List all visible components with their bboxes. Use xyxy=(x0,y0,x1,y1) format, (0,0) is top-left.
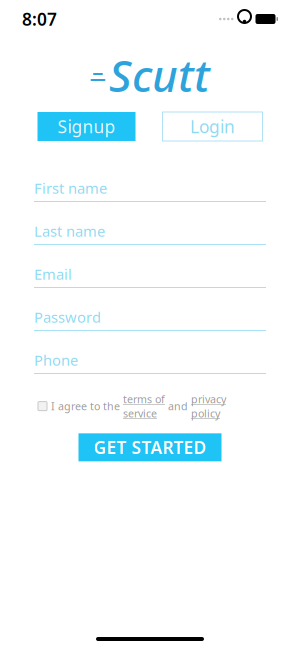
staticText: GET STARTED xyxy=(93,436,206,459)
staticText: Phone xyxy=(34,350,78,370)
staticText: 8:07 xyxy=(22,7,57,30)
staticText: Password xyxy=(34,307,101,327)
staticText: First name xyxy=(34,178,107,198)
staticText: Email xyxy=(34,264,72,284)
staticText: Scutt xyxy=(109,46,210,104)
staticText: Last name xyxy=(34,221,105,241)
button[interactable]: Signup xyxy=(37,112,135,141)
staticText: terms of service xyxy=(123,392,165,420)
button[interactable]: privacy policy xyxy=(191,392,226,420)
button[interactable]: Last name xyxy=(34,210,266,253)
button[interactable]: Password xyxy=(34,296,266,339)
staticText: privacy policy xyxy=(191,392,226,420)
staticText: Login xyxy=(190,115,235,138)
button[interactable]: Phone xyxy=(34,339,266,382)
button[interactable]: Email xyxy=(34,253,266,296)
button[interactable]: terms of service xyxy=(123,392,165,420)
button[interactable]: GET STARTED xyxy=(78,433,221,461)
staticText: and xyxy=(165,399,191,413)
button[interactable]: First name xyxy=(34,167,266,210)
staticText: I agree to the xyxy=(51,399,123,413)
button[interactable]: Agree to terms xyxy=(34,398,51,415)
staticText: Signup xyxy=(57,115,115,138)
button[interactable]: Login xyxy=(162,112,262,141)
